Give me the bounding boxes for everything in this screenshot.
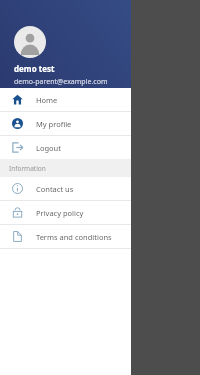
staticText: I xyxy=(128,34,137,64)
button[interactable]: Home xyxy=(0,88,131,111)
staticText: Logout xyxy=(36,143,61,153)
staticText: Information xyxy=(9,164,46,173)
button[interactable]: Privacy policy xyxy=(0,201,131,224)
staticText: demo test xyxy=(14,63,55,74)
staticText: Privacy policy xyxy=(36,208,84,218)
button[interactable]: My profile xyxy=(0,112,131,135)
staticText: Home xyxy=(36,95,58,105)
staticText: My profile xyxy=(36,119,72,129)
staticText: book xyxy=(124,136,143,147)
button[interactable]: Contact us xyxy=(0,177,131,200)
staticText: demo-parent@example.com xyxy=(14,77,108,87)
button[interactable]: demo test xyxy=(0,0,131,88)
staticText: Contact us xyxy=(36,184,74,194)
button[interactable]: Logout xyxy=(0,136,131,159)
button[interactable]: Terms and conditions xyxy=(0,225,131,248)
staticText: Terms and conditions xyxy=(36,232,112,242)
